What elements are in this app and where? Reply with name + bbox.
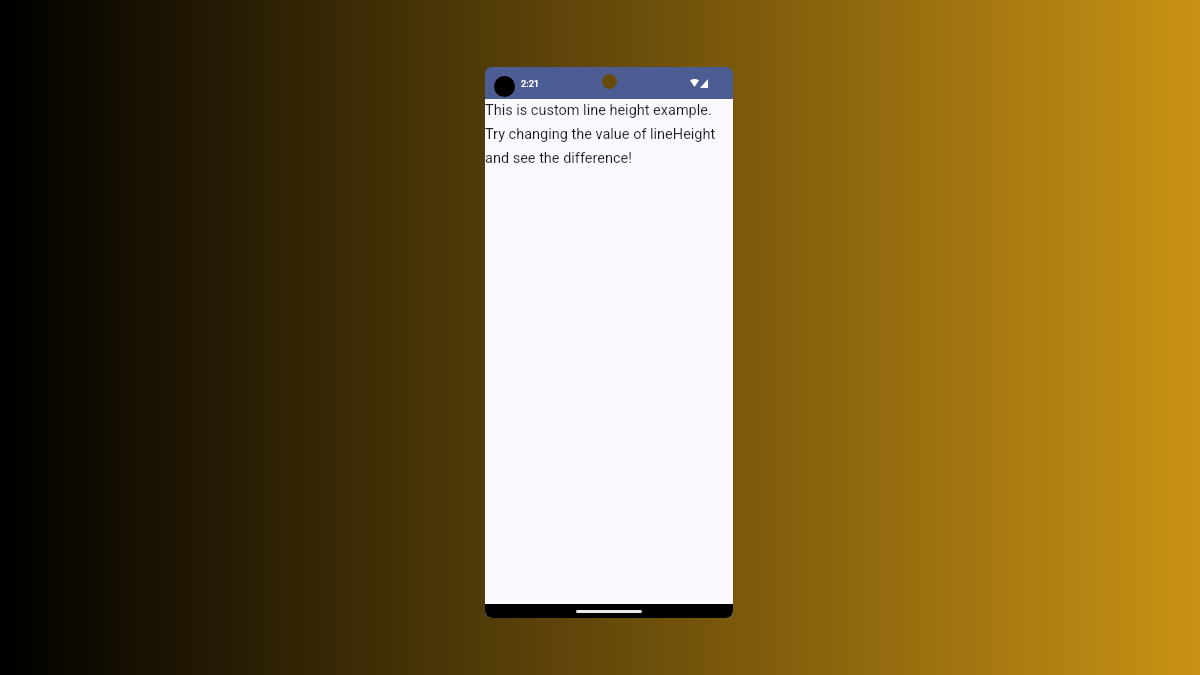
button[interactable]: Wi-Fi: [690, 78, 699, 87]
button[interactable]: 2:21: [521, 78, 540, 89]
staticText: This is custom line height example. Try …: [485, 96, 733, 168]
button[interactable]: Notifications: [494, 76, 515, 97]
button[interactable]: Home: [485, 604, 733, 618]
button[interactable]: Mobile signal: [700, 79, 708, 88]
